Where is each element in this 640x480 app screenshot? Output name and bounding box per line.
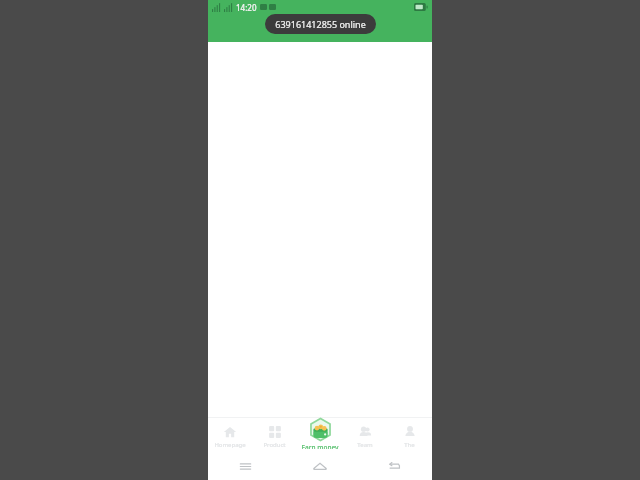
- button[interactable]: Recent apps: [208, 452, 282, 480]
- staticText: 639161412855 online: [275, 18, 366, 30]
- button[interactable]: Home: [282, 452, 357, 480]
- button[interactable]: Earn money: [297, 417, 342, 452]
- button[interactable]: The: [387, 417, 432, 452]
- staticText: Earn money: [301, 443, 339, 449]
- staticText: Team: [357, 441, 373, 449]
- other: Earn money: [308, 417, 333, 442]
- button[interactable]: Back: [357, 452, 432, 480]
- staticText: Product: [263, 441, 286, 449]
- button[interactable]: Team: [342, 417, 387, 452]
- button[interactable]: Homepage: [208, 417, 252, 452]
- button[interactable]: 639161412855 online: [265, 14, 376, 34]
- staticText: Homepage: [214, 441, 246, 449]
- button[interactable]: Product: [252, 417, 297, 452]
- staticText: 14:20: [236, 2, 257, 13]
- staticText: The: [404, 441, 415, 449]
